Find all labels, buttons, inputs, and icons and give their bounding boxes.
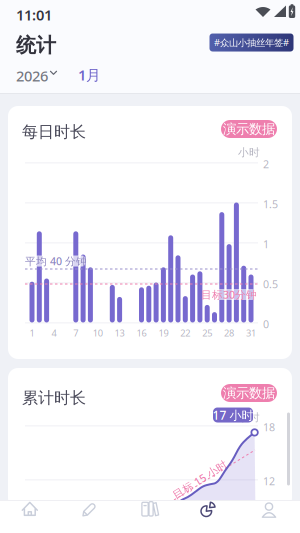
staticText: 每日时长 [22,122,86,142]
staticText: 累计时长 [22,388,86,408]
staticText: 1 [263,237,269,251]
staticText: 7 [73,327,78,339]
staticText: 2 [263,157,269,171]
staticText: 10 [93,327,103,339]
staticText: 19 [158,327,168,339]
staticText: 16 [136,327,146,339]
staticText: 演示数据 [223,385,275,401]
staticText: 11:01 [16,5,52,24]
staticText: 12 [263,474,275,488]
staticText: 28 [224,327,234,339]
staticText: #众山小抽丝年签# [214,36,289,49]
staticText: 小时 [238,411,260,424]
staticText: 1.5 [263,197,278,211]
staticText: 25 [202,327,212,339]
staticText: 目标 15 小时 [169,472,231,487]
staticText: 13 [115,327,125,339]
staticText: 2026 [16,66,48,85]
staticText: 目标30分钟 [201,287,257,302]
staticText: 0 [263,317,269,331]
staticText: 4 [51,327,56,339]
staticText: 17 小时 [212,407,253,423]
staticText: 演示数据 [223,121,275,137]
staticText: 22 [180,327,190,339]
staticText: 31 [246,327,256,339]
staticText: 1月 [78,65,101,84]
staticText: 1 [29,327,34,339]
staticText: 0.5 [263,277,278,291]
staticText: 18 [263,420,275,434]
staticText: 小时 [238,146,260,159]
staticText: 平均 40 分钟 [25,254,87,268]
staticText: 统计 [16,33,56,58]
